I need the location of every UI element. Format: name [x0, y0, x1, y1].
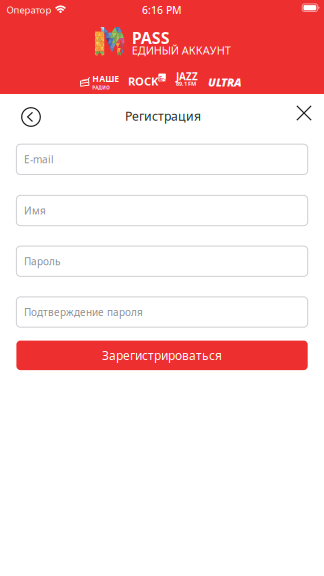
staticText: JAZZ — [176, 70, 198, 83]
staticText: ЕДИНЫЙ АККАУНТ — [132, 43, 231, 58]
staticText: 6:16 PM — [142, 3, 182, 17]
staticText: 95.2 — [159, 78, 166, 83]
staticText: Подтверждение пароля — [24, 305, 143, 319]
staticText: РАДИО — [92, 85, 110, 91]
staticText: Имя — [24, 204, 46, 217]
staticText: PASS — [132, 27, 170, 49]
staticText: Пароль — [24, 254, 60, 268]
staticText: 89.1 FM — [176, 80, 196, 87]
staticText: Зарегистрироваться — [102, 347, 222, 363]
staticText: Оператор — [6, 3, 51, 16]
button[interactable]: Back — [20, 106, 42, 128]
staticText: ULTRA — [208, 74, 242, 90]
button[interactable]: Зарегистрироваться — [16, 341, 308, 370]
staticText: НАШЕ — [92, 73, 119, 85]
staticText: E-mail — [24, 152, 54, 166]
staticText: Регистрация — [125, 108, 201, 124]
button[interactable]: Close — [296, 105, 312, 121]
staticText: ROCK — [128, 73, 158, 89]
staticText: FM — [159, 74, 165, 90]
